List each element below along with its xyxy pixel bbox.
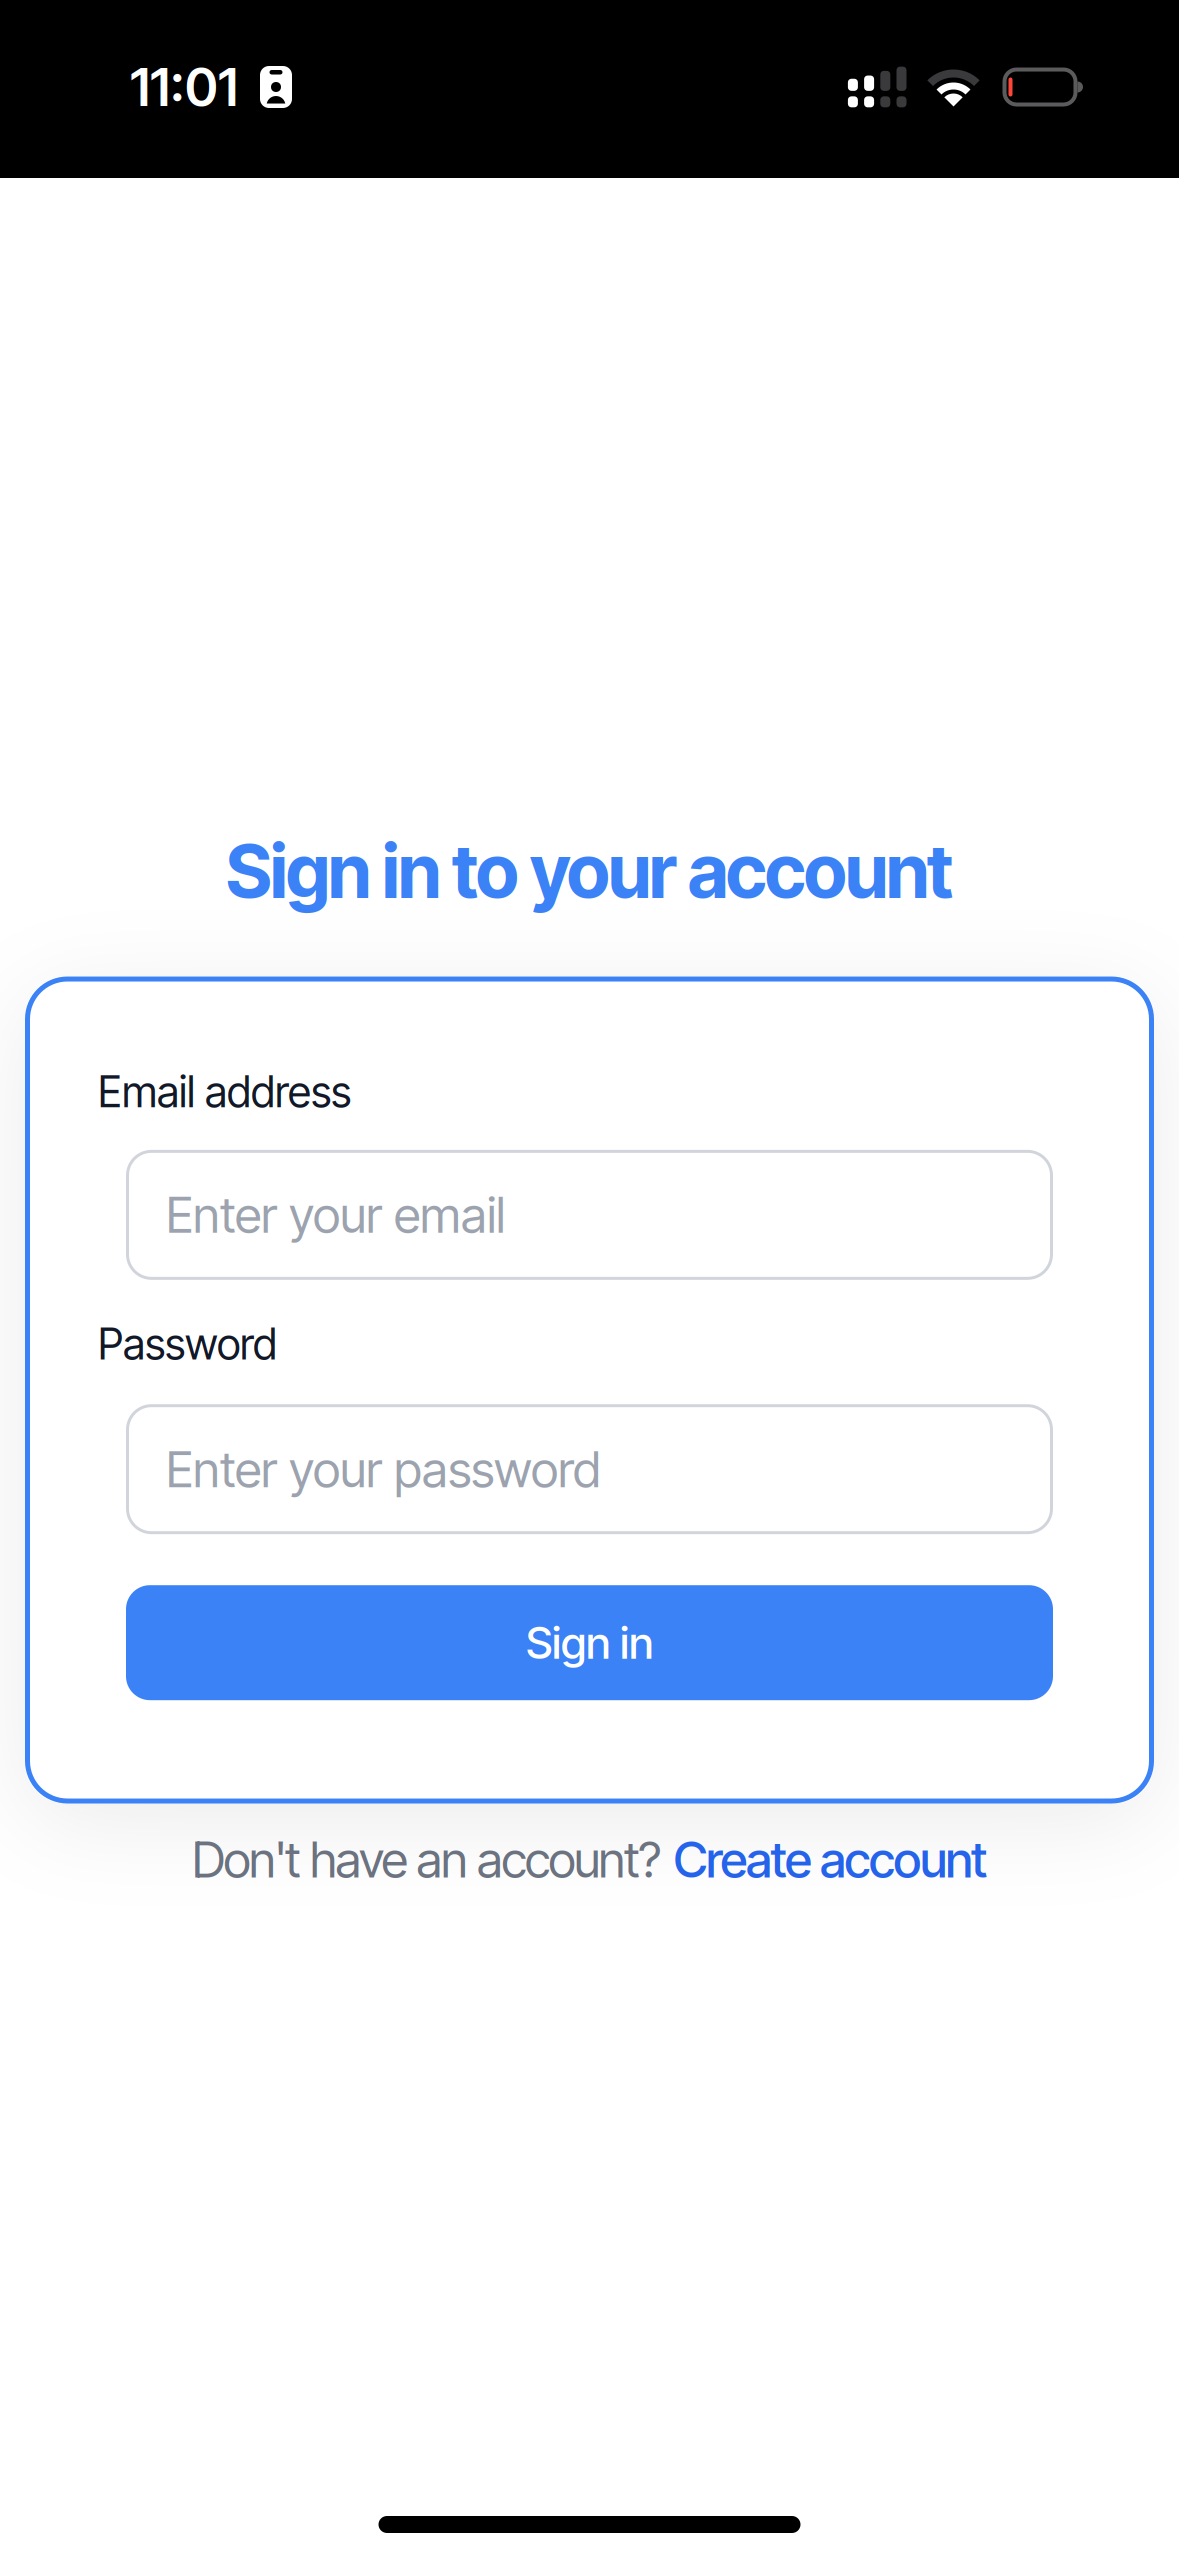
staticText: 11:01 [130, 56, 238, 118]
staticText: Password [98, 1319, 277, 1369]
staticText: Email address [98, 1066, 351, 1117]
staticText: Create account [673, 1830, 987, 1889]
staticText: Don't have an account? [192, 1830, 661, 1889]
staticText: Sign in to your account [226, 828, 953, 914]
button[interactable]: Sign in [126, 1585, 1053, 1700]
button[interactable]: Create account [673, 1830, 987, 1889]
textField[interactable]: Enter your email [126, 1150, 1053, 1280]
staticText: Enter your password [166, 1440, 601, 1498]
secureTextField[interactable]: Enter your password [126, 1404, 1053, 1534]
staticText: Enter your email [166, 1186, 505, 1244]
staticText: Sign in [526, 1617, 653, 1669]
